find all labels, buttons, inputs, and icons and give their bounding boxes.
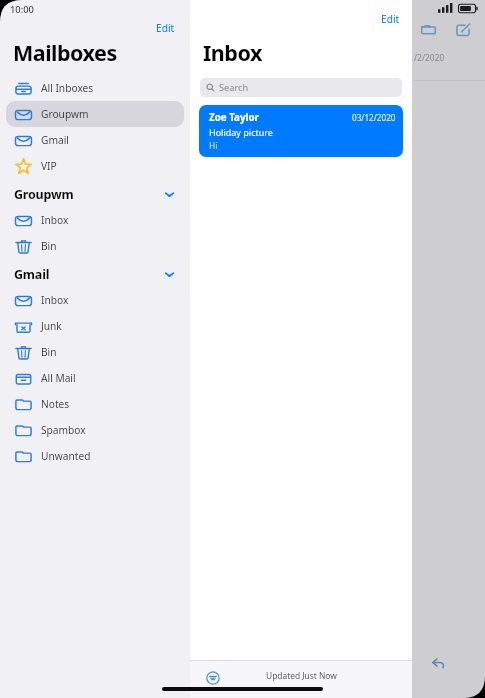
button[interactable]: Inbox <box>6 287 184 313</box>
button[interactable]: Move to folder <box>414 18 442 42</box>
button[interactable]: All Inboxes <box>6 75 184 101</box>
button[interactable]: Gmail <box>6 127 184 153</box>
button[interactable]: Filter <box>202 667 224 689</box>
staticText: Unwanted <box>41 449 91 463</box>
staticText: Gmail <box>14 266 50 283</box>
staticText: All Inboxes <box>41 81 94 95</box>
staticText: Notes <box>41 397 70 411</box>
button[interactable]: Edit <box>152 18 179 38</box>
button[interactable]: Unwanted <box>6 443 184 469</box>
staticText: VIP <box>41 159 57 173</box>
staticText: 10:00 <box>10 3 34 16</box>
staticText: /2/2020 <box>414 52 445 63</box>
staticText: Inbox <box>203 38 262 67</box>
button[interactable]: Junk <box>6 313 184 339</box>
button[interactable]: Groupwm <box>0 181 190 207</box>
button[interactable]: Bin <box>6 339 184 365</box>
staticText: 03/12/2020 <box>352 112 396 123</box>
button[interactable]: Spambox <box>6 417 184 443</box>
staticText: All Mail <box>41 371 76 385</box>
staticText: Holiday picture <box>209 126 273 138</box>
button[interactable]: Reply <box>425 650 451 674</box>
button[interactable]: Edit <box>377 9 404 29</box>
staticText: Gmail <box>41 133 69 147</box>
button[interactable]: Search <box>200 78 402 97</box>
button[interactable]: Notes <box>6 391 184 417</box>
button[interactable]: VIP <box>6 153 184 179</box>
staticText: Updated Just Now <box>266 670 337 681</box>
staticText: Bin <box>41 345 57 359</box>
staticText: Edit <box>381 12 400 26</box>
staticText: Hi <box>209 140 218 151</box>
staticText: Junk <box>41 319 62 333</box>
staticText: Search <box>219 81 249 94</box>
button[interactable]: Bin <box>6 233 184 259</box>
staticText: Groupwm <box>41 107 89 121</box>
button[interactable]: All Mail <box>6 365 184 391</box>
staticText: Spambox <box>41 423 86 437</box>
button[interactable]: Zoe Taylor <box>199 105 403 157</box>
staticText: Mailboxes <box>13 38 117 67</box>
button[interactable]: Inbox <box>6 207 184 233</box>
button[interactable]: Groupwm <box>6 101 184 127</box>
staticText: Inbox <box>41 293 69 307</box>
button[interactable]: Compose <box>449 18 477 42</box>
button[interactable]: Gmail <box>0 261 190 287</box>
staticText: Edit <box>156 21 175 35</box>
staticText: Inbox <box>41 213 69 227</box>
staticText: Groupwm <box>14 186 74 203</box>
staticText: Zoe Taylor <box>209 111 259 124</box>
staticText: Bin <box>41 239 57 253</box>
